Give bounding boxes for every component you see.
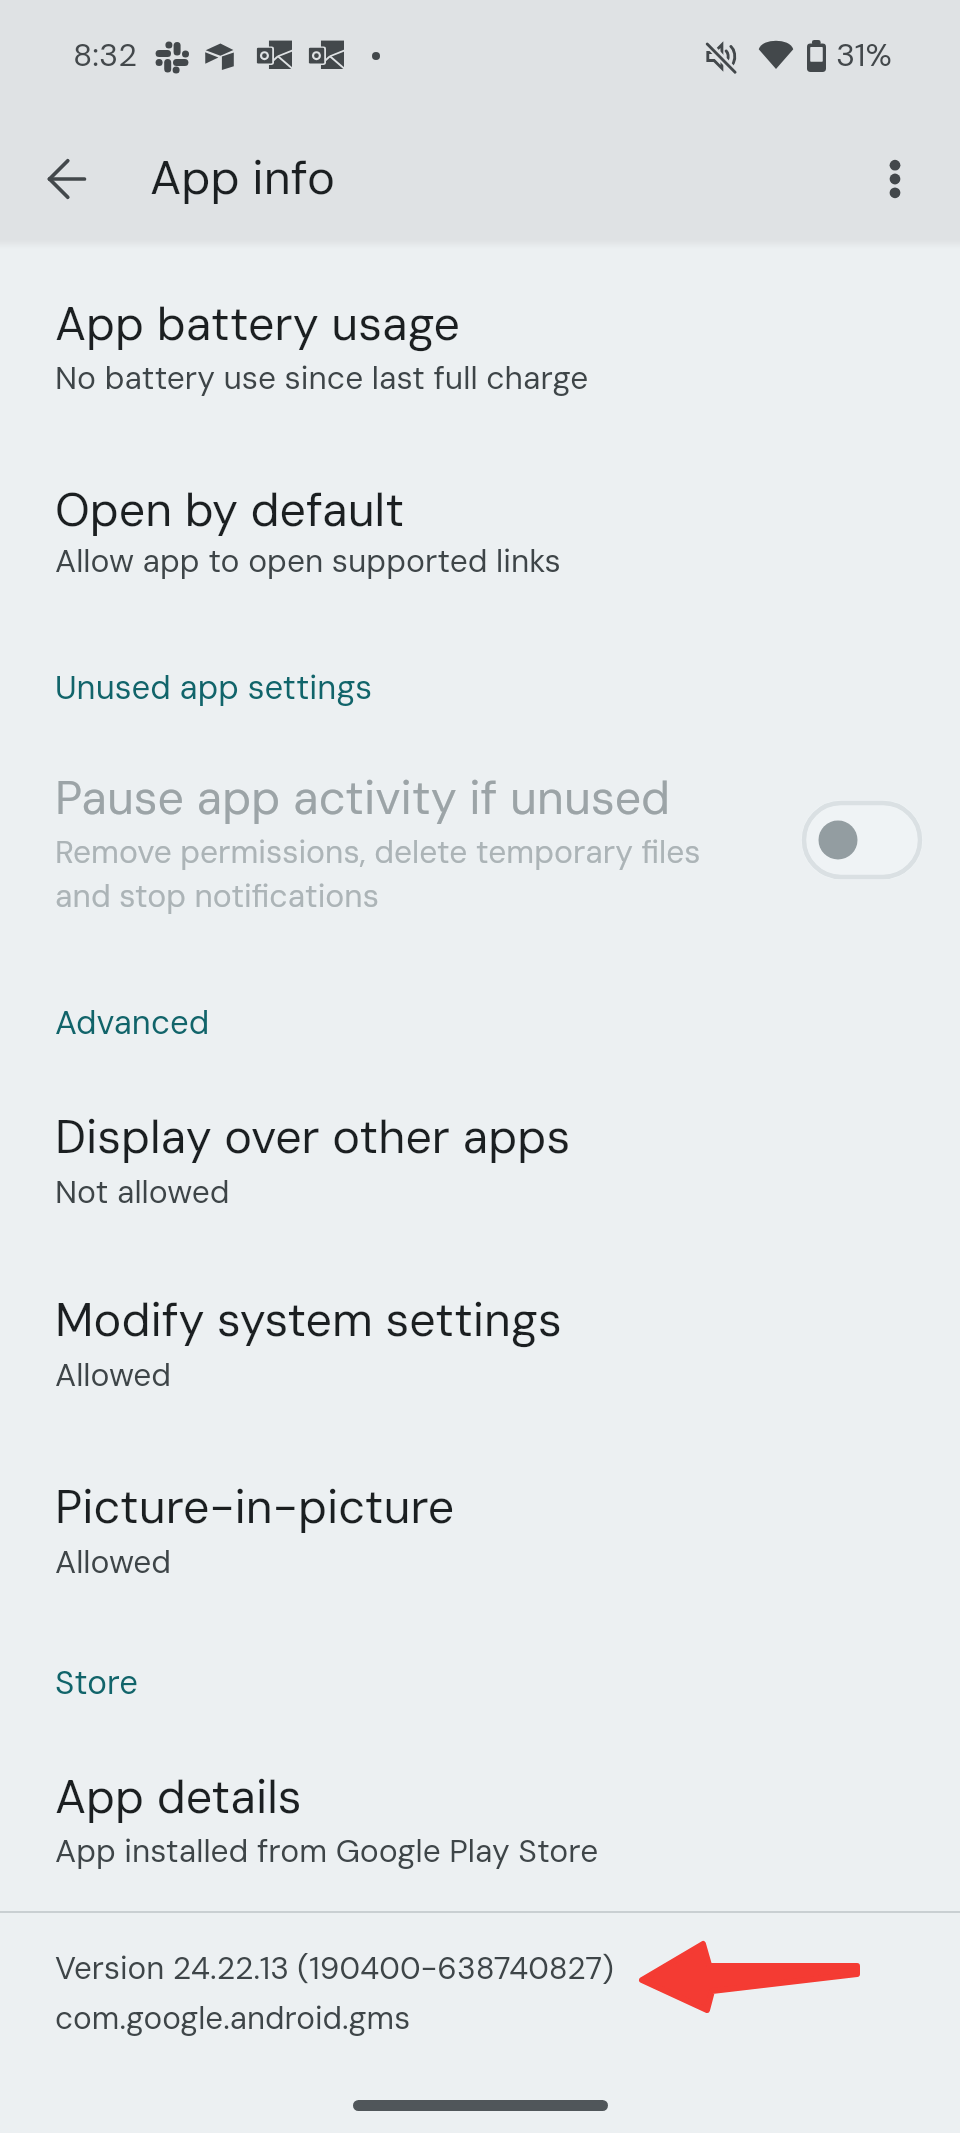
staticText: No battery use since last full charge <box>55 357 955 398</box>
staticText: App info <box>150 147 335 208</box>
staticText: Pause app activity if unused <box>55 768 671 829</box>
staticText: Version 24.22.13 (190400-638740827) com.… <box>55 1948 614 2039</box>
button[interactable] <box>0 266 960 426</box>
staticText: Open by default <box>55 480 405 541</box>
staticText: Allow app to open supported links <box>55 540 955 581</box>
button[interactable]: Back <box>30 142 103 215</box>
staticText: App battery usage <box>55 294 461 355</box>
staticText: 31% <box>836 34 892 76</box>
button[interactable]: Pause app activity if unused toggle <box>801 800 923 880</box>
staticText: Picture-in-picture <box>55 1477 455 1538</box>
staticText: Allowed <box>55 1354 955 1395</box>
button[interactable] <box>0 740 960 940</box>
staticText: Remove permissions, delete temporary fil… <box>55 831 715 916</box>
button[interactable] <box>0 1079 960 1240</box>
button[interactable] <box>0 1449 960 1610</box>
staticText: Store <box>55 1661 138 1704</box>
staticText: App installed from Google Play Store <box>55 1830 955 1871</box>
button[interactable] <box>0 452 960 609</box>
button[interactable] <box>0 1739 960 1899</box>
staticText: App details <box>55 1767 302 1828</box>
button[interactable] <box>0 1262 960 1423</box>
staticText: Unused app settings <box>55 666 373 709</box>
staticText: Modify system settings <box>55 1290 562 1351</box>
button[interactable]: More options <box>858 142 931 215</box>
staticText: 8:32 <box>73 34 138 76</box>
staticText: Not allowed <box>55 1171 955 1212</box>
staticText: Allowed <box>55 1541 955 1582</box>
staticText: Advanced <box>55 1001 210 1044</box>
staticText: Display over other apps <box>55 1107 571 1168</box>
